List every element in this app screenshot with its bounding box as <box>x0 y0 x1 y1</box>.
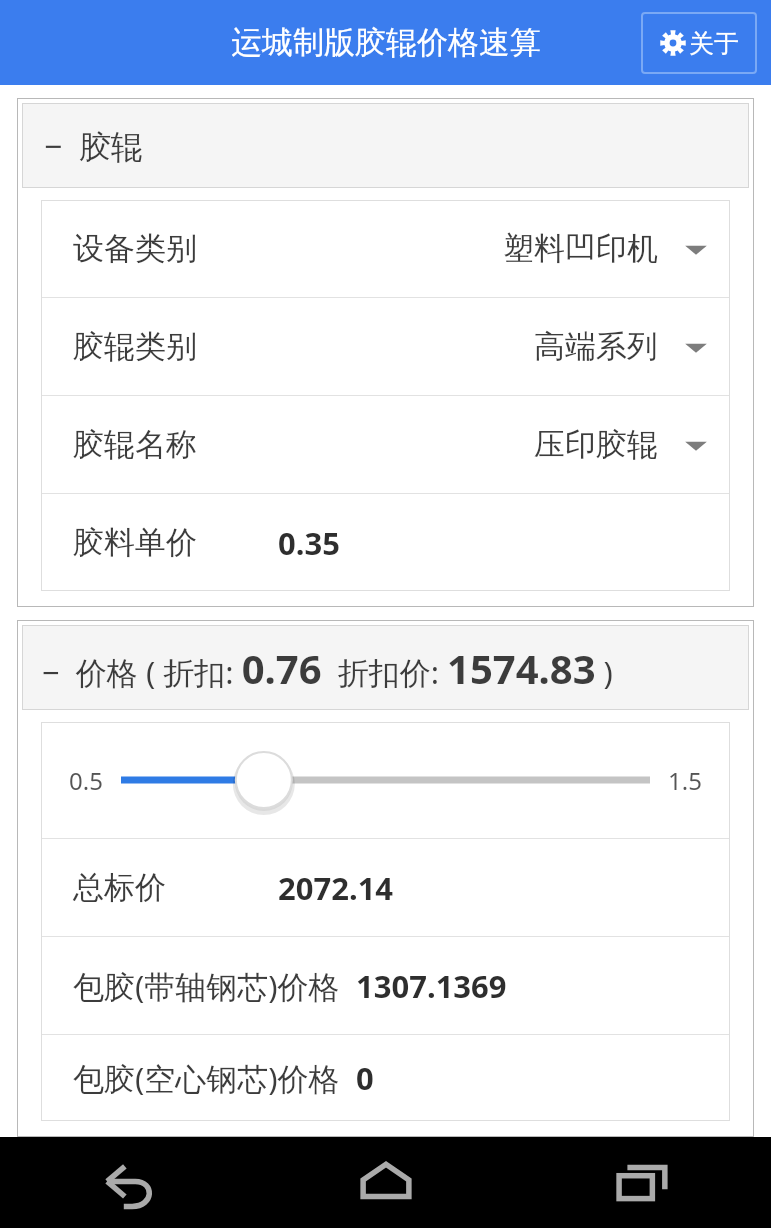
staticText: 运城制版胶辊价格速算 <box>231 23 541 62</box>
staticText: 塑料凹印机 <box>503 229 658 268</box>
staticText: 0 <box>356 1057 374 1099</box>
staticText: 关于 <box>689 28 739 59</box>
staticText: 胶料单价 <box>73 523 197 562</box>
button[interactable]: Recents <box>514 1137 771 1228</box>
button[interactable]: Back <box>0 1137 257 1228</box>
button[interactable]: − 胶辊 <box>22 103 749 188</box>
staticText: 总标价 <box>73 868 166 907</box>
button[interactable]: 包胶(空心钢芯)价格 <box>41 1035 730 1121</box>
button[interactable]: 0.5 <box>41 722 730 838</box>
button[interactable]: 胶辊名称 <box>41 396 730 493</box>
staticText: 包胶(空心钢芯)价格 <box>73 1057 340 1099</box>
staticText: 1307.1369 <box>356 965 507 1007</box>
staticText: 压印胶辊 <box>534 425 658 464</box>
button[interactable]: 总标价 <box>41 839 730 936</box>
button[interactable]: 胶辊类别 <box>41 298 730 395</box>
staticText: 1.5 <box>668 764 702 797</box>
staticText: 2072.14 <box>278 867 394 909</box>
staticText: 设备类别 <box>73 229 197 268</box>
button[interactable]: 设备类别 <box>41 200 730 297</box>
staticText: − 价格 ( 折扣: 0.76 折扣价: 1574.83 ) <box>42 641 613 695</box>
button[interactable]: 胶料单价 <box>41 494 730 591</box>
staticText: − 胶辊 <box>44 124 143 168</box>
staticText: 0.5 <box>69 764 103 797</box>
staticText: 高端系列 <box>534 327 658 366</box>
staticText: 包胶(带轴钢芯)价格 <box>73 965 340 1007</box>
button[interactable]: 关于 About <box>641 12 757 74</box>
staticText: 0.35 <box>278 522 340 564</box>
staticText: 胶辊名称 <box>73 425 197 464</box>
button[interactable]: − 价格 ( 折扣: 0.76 折扣价: 1574.83 ) <box>22 625 749 710</box>
button[interactable]: 包胶(带轴钢芯)价格 <box>41 937 730 1034</box>
staticText: 胶辊类别 <box>73 327 197 366</box>
button[interactable]: Home <box>257 1137 514 1228</box>
